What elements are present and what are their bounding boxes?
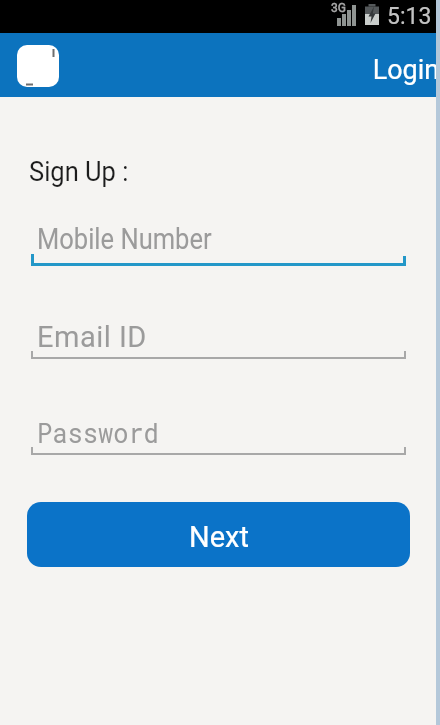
button[interactable]: Email ID <box>31 311 406 359</box>
button[interactable]: Login <box>373 53 440 86</box>
staticText: Password <box>37 415 159 451</box>
button[interactable]: Mobile Number <box>31 214 406 266</box>
button[interactable] <box>17 45 59 87</box>
staticText: 5:13 <box>387 3 432 30</box>
staticText: Next <box>189 520 249 554</box>
staticText: 3G <box>331 1 346 15</box>
button[interactable]: Next <box>27 502 410 567</box>
staticText: Mobile Number <box>37 222 212 256</box>
staticText: Sign Up : <box>29 155 129 188</box>
button[interactable]: Password <box>31 407 406 455</box>
staticText: Email ID <box>37 320 147 354</box>
